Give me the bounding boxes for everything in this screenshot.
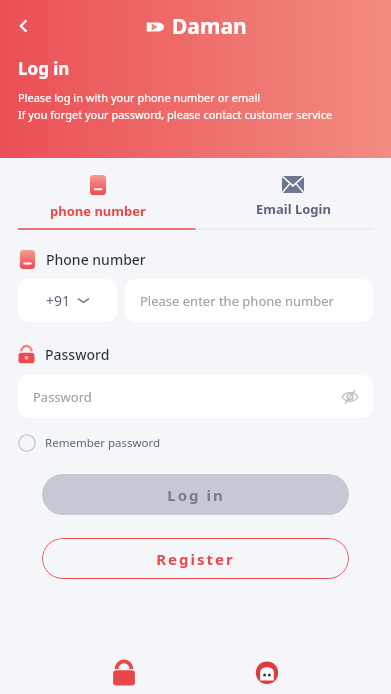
staticText: Remember password [45,435,161,451]
button[interactable]: Email Login [195,166,391,228]
staticText: If you forget your password, please cont… [18,107,333,122]
button[interactable]: Register [42,538,349,579]
staticText: Register [156,549,235,569]
other: Show password [341,388,359,406]
button[interactable]: phone number [0,166,195,228]
button[interactable]: Customer service [247,654,287,694]
button[interactable]: Remember password [18,434,161,452]
staticText: Please enter the phone number [140,292,334,310]
button[interactable]: Please enter the phone number [125,279,373,322]
button[interactable]: Forgot password [104,654,144,694]
staticText: +91 [46,291,71,310]
staticText: Please log in with your phone number or … [18,90,261,105]
button[interactable]: Log in [42,474,349,515]
button[interactable]: Password [18,375,373,418]
staticText: Phone number [46,250,146,269]
staticText: Email Login [256,200,331,218]
button[interactable]: Back [4,6,44,46]
button[interactable]: +91 [18,279,117,322]
staticText: Log in [18,57,70,80]
staticText: Password [45,345,110,364]
staticText: Password [33,388,341,406]
staticText: Log in [167,485,225,505]
staticText: Daman [172,12,247,41]
staticText: phone number [50,202,146,220]
